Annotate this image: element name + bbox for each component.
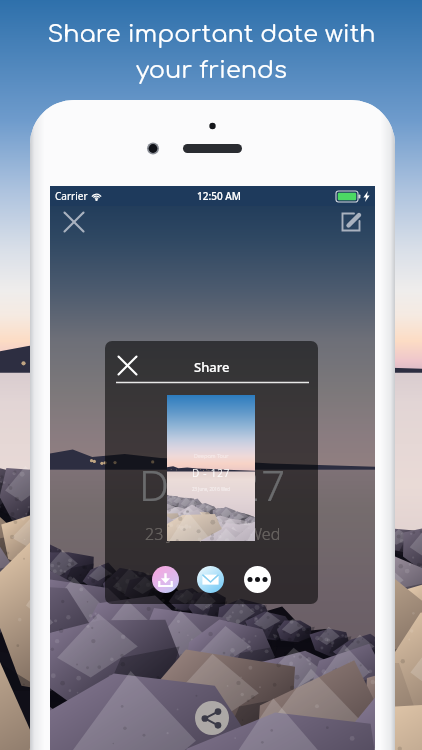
button[interactable]: More bbox=[244, 566, 271, 593]
button[interactable]: Close share bbox=[111, 349, 144, 382]
staticText: D - 127 bbox=[139, 456, 287, 513]
button[interactable]: Close bbox=[57, 205, 91, 239]
button[interactable]: Share bbox=[195, 701, 229, 735]
staticText: 12:50 AM bbox=[197, 189, 241, 203]
staticText: 23 June, 2016 Wed bbox=[192, 486, 231, 492]
staticText: D - 127 bbox=[192, 466, 231, 480]
staticText: Carrier bbox=[55, 189, 88, 203]
staticText: 23 June, 2016 Wed bbox=[145, 523, 281, 545]
button[interactable]: Edit bbox=[334, 205, 368, 239]
staticText: Deepam Tour bbox=[194, 454, 229, 460]
staticText: Share bbox=[194, 358, 230, 376]
button[interactable]: Save bbox=[152, 566, 179, 593]
button[interactable]: Mail bbox=[197, 566, 224, 593]
staticText: Share important date with your friends bbox=[47, 21, 376, 84]
